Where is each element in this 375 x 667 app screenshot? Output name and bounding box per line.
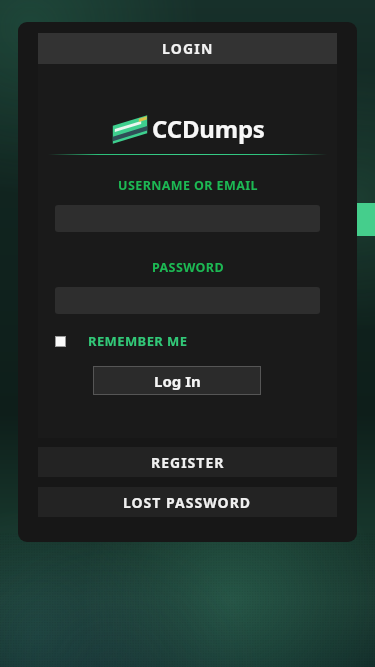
staticText: LOGIN bbox=[162, 39, 214, 58]
staticText: PASSWORD bbox=[152, 259, 224, 276]
button[interactable]: REMEMBER ME bbox=[55, 332, 320, 350]
button[interactable]: Log In bbox=[93, 366, 261, 395]
staticText: Log In bbox=[154, 371, 201, 391]
button[interactable]: LOST PASSWORD bbox=[38, 487, 337, 517]
staticText: USERNAME OR EMAIL bbox=[118, 177, 258, 194]
staticText: REGISTER bbox=[151, 453, 225, 472]
staticText: REMEMBER ME bbox=[88, 332, 188, 350]
staticText: LOST PASSWORD bbox=[123, 493, 252, 512]
staticText: CCDumps bbox=[152, 112, 265, 145]
button[interactable]: LOGIN bbox=[38, 33, 337, 64]
button[interactable]: REGISTER bbox=[38, 447, 337, 477]
